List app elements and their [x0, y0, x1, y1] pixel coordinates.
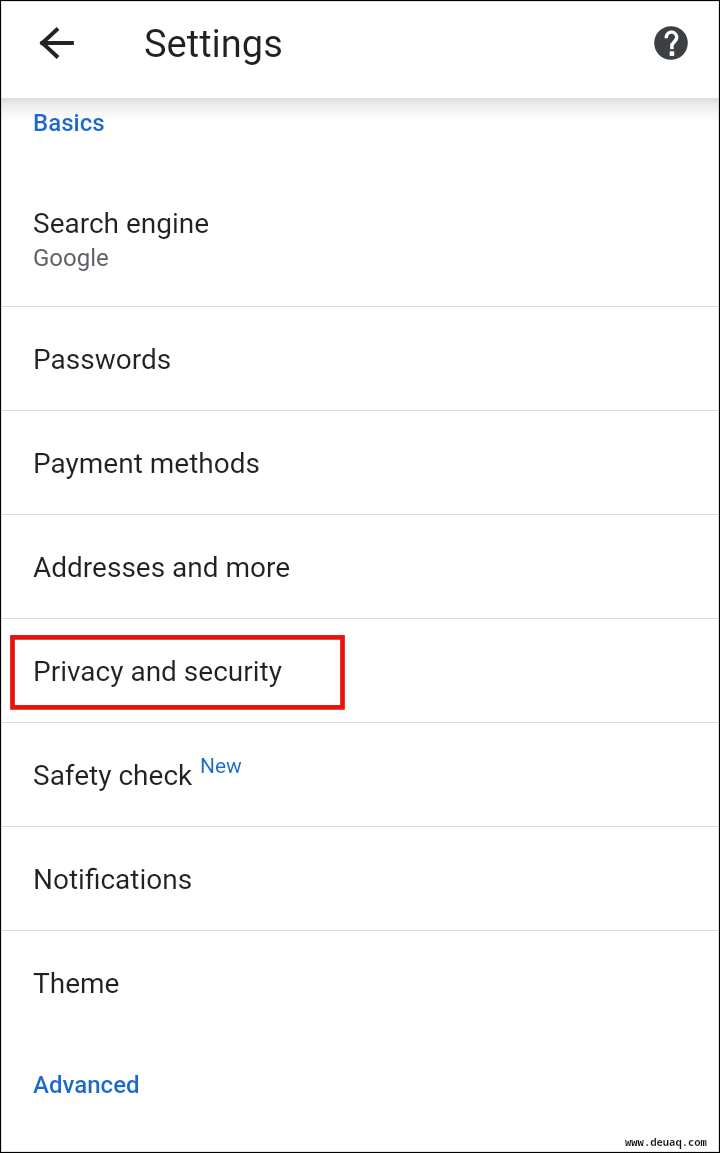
button[interactable]: Theme: [0, 930, 720, 1034]
button[interactable]: Help: [635, 7, 707, 79]
staticText: Search engine: [33, 207, 210, 240]
staticText: Payment methods: [33, 447, 260, 480]
staticText: Passwords: [33, 343, 172, 376]
staticText: Privacy and security: [33, 655, 282, 688]
staticText: Google: [33, 244, 109, 272]
button[interactable]: Advanced: [0, 1034, 720, 1138]
staticText: Theme: [33, 967, 120, 1000]
button[interactable]: Safety check: [0, 722, 720, 826]
staticText: Addresses and more: [33, 551, 291, 584]
staticText: Notifications: [33, 863, 193, 896]
button[interactable]: Addresses and more: [0, 514, 720, 618]
button[interactable]: Back: [20, 7, 92, 79]
staticText: Basics: [33, 109, 105, 137]
button[interactable]: Notifications: [0, 826, 720, 930]
button[interactable]: Passwords: [0, 306, 720, 410]
button[interactable]: Payment methods: [0, 410, 720, 514]
staticText: www.deuaq.com: [625, 1135, 707, 1149]
staticText: Settings: [144, 22, 283, 67]
staticText: New: [200, 754, 242, 779]
button[interactable]: Privacy and security: [0, 618, 720, 722]
staticText: Safety check: [33, 759, 193, 792]
button[interactable]: Search engine: [0, 202, 720, 306]
staticText: Advanced: [33, 1071, 140, 1099]
